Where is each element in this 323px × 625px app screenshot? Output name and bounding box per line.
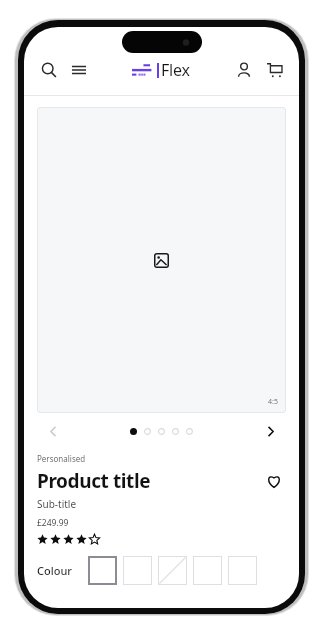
button[interactable]: Image 4 bbox=[168, 424, 182, 438]
button[interactable]: Image 5 bbox=[182, 424, 196, 438]
button[interactable]: Search bbox=[36, 57, 62, 83]
button[interactable]: Flex home bbox=[132, 59, 190, 81]
button[interactable]: Previous image bbox=[42, 420, 64, 442]
staticText: Colour bbox=[37, 563, 72, 578]
staticText: Flex bbox=[161, 59, 190, 81]
button[interactable]: Colour option 1 bbox=[88, 556, 117, 585]
button[interactable]: Image 2 bbox=[140, 424, 154, 438]
staticText: 4:5 bbox=[268, 397, 278, 407]
button[interactable]: Rating 4 out of 5 bbox=[37, 534, 100, 545]
staticText: £249.99 bbox=[37, 517, 69, 529]
button[interactable]: Colour option 3 bbox=[158, 556, 187, 585]
button[interactable]: Product image bbox=[37, 107, 286, 413]
button[interactable]: Account bbox=[231, 57, 257, 83]
button[interactable]: Colour option 2 bbox=[123, 556, 152, 585]
button[interactable]: Next image bbox=[259, 420, 281, 442]
staticText: Product title bbox=[37, 468, 262, 494]
button[interactable]: Image 3 bbox=[154, 424, 168, 438]
staticText: Sub-title bbox=[37, 497, 77, 511]
button[interactable]: Menu bbox=[66, 57, 92, 83]
button[interactable]: Add to wishlist bbox=[262, 469, 286, 493]
button[interactable]: Basket bbox=[261, 57, 287, 83]
staticText: Personalised bbox=[37, 453, 86, 464]
button[interactable]: Image 1 bbox=[126, 424, 140, 438]
button[interactable]: Colour option 4 bbox=[193, 556, 222, 585]
button[interactable]: Colour option 5 bbox=[228, 556, 257, 585]
